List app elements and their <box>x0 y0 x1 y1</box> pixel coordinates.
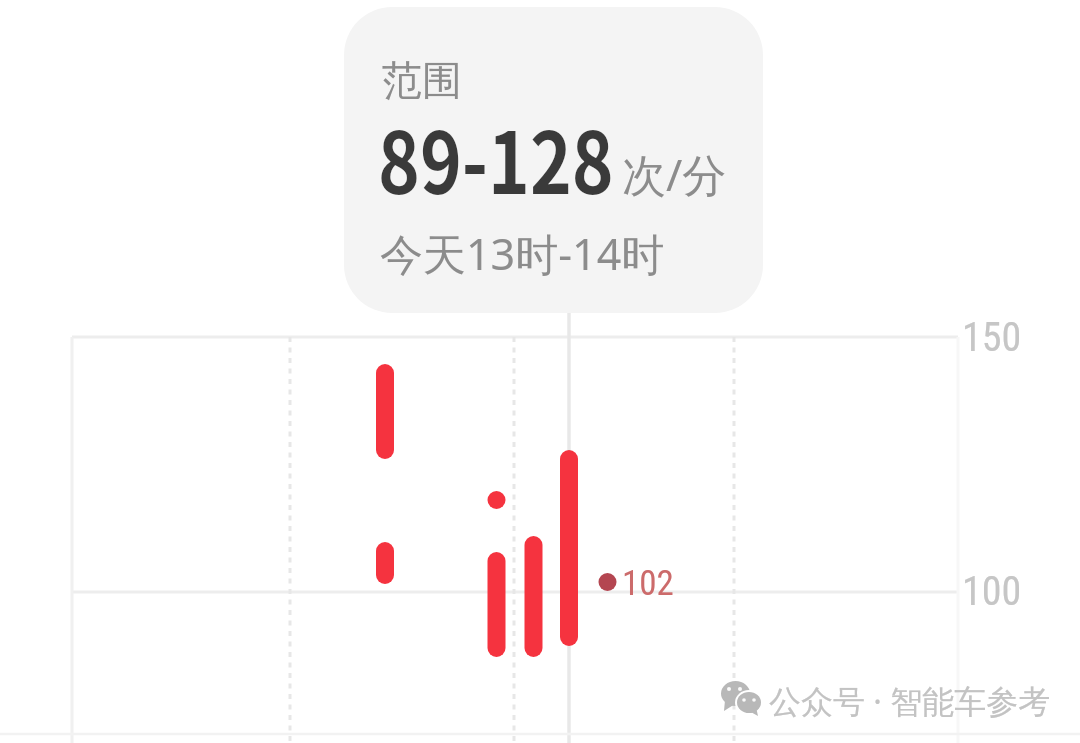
staticText: 100 <box>962 568 1022 615</box>
staticText: 102 <box>622 563 674 604</box>
staticText: 公众号 · 智能车参考 <box>769 679 1051 723</box>
button[interactable]: Heart rate chart, 13:00 to 14:00 <box>0 313 1080 743</box>
button[interactable]: 范围 <box>344 7 763 313</box>
other: WeChat official account <box>716 676 768 722</box>
staticText: 150 <box>962 314 1022 361</box>
staticText: 范围 <box>382 55 462 105</box>
staticText: 次/分 <box>622 144 727 204</box>
staticText: 89-128 <box>378 95 614 218</box>
staticText: 今天13时-14时 <box>380 224 665 283</box>
